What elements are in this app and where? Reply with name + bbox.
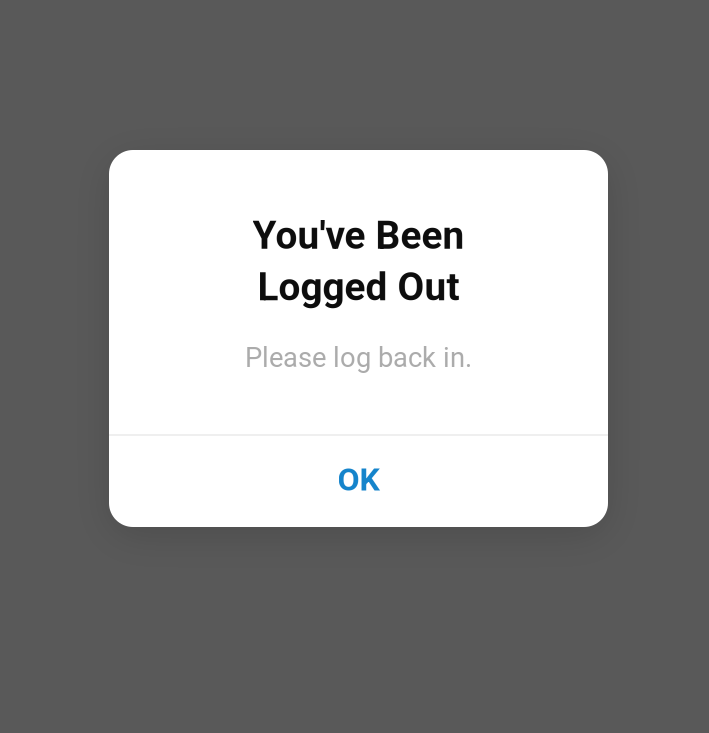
staticText: OK bbox=[337, 461, 379, 498]
button[interactable]: OK bbox=[109, 436, 608, 527]
staticText: You've Been bbox=[252, 213, 464, 258]
staticText: Logged Out bbox=[257, 264, 459, 310]
staticText: Please log back in. bbox=[245, 342, 472, 374]
